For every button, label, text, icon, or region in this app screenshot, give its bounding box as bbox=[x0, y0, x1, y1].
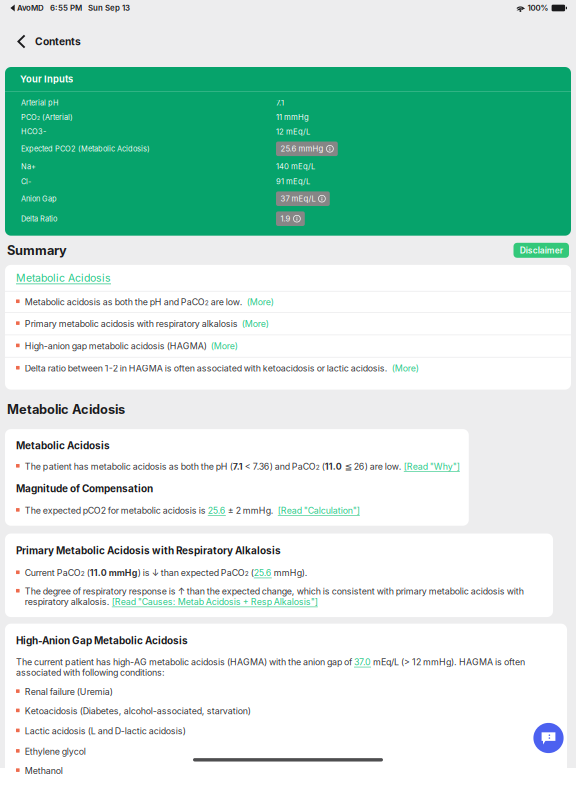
staticText: Summary bbox=[7, 243, 67, 258]
button[interactable]: Metabolic acidosis as both the pH and Pa… bbox=[5, 291, 571, 312]
staticText: Your Inputs bbox=[20, 73, 73, 85]
staticText: Methanol bbox=[25, 765, 63, 776]
staticText: Expected PCO2 (Metabolic Acidosis) bbox=[21, 144, 150, 153]
staticText: Renal failure (Uremia) bbox=[25, 686, 113, 697]
staticText: Metabolic Acidosis bbox=[16, 272, 111, 284]
button[interactable]: Delta ratio between 1-2 in HAGMA is ofte… bbox=[5, 357, 571, 379]
button[interactable]: Metabolic Acidosis bbox=[5, 265, 571, 291]
staticText: The expected pCO2 for metabolic acidosis… bbox=[25, 505, 360, 516]
staticText: 100% bbox=[526, 3, 549, 13]
staticText: Current PaCO2 (11.0 mmHg) is ↓ than expe… bbox=[25, 568, 308, 578]
staticText: Disclaimer bbox=[520, 245, 563, 255]
staticText: 1.9 bbox=[280, 214, 290, 223]
staticText: Metabolic Acidosis bbox=[7, 402, 125, 417]
staticText: 11 mmHg bbox=[276, 112, 309, 122]
button[interactable]: Disclaimer bbox=[513, 243, 569, 258]
staticText: HCO3- bbox=[21, 127, 46, 136]
staticText: The patient has metabolic acidosis as bo… bbox=[25, 461, 460, 472]
staticText: Ketoacidosis (Diabetes, alcohol-associat… bbox=[25, 706, 251, 716]
staticText: Arterial pH bbox=[21, 98, 59, 107]
staticText: Primary metabolic acidosis with respirat… bbox=[25, 318, 269, 329]
staticText: PCO2 (Arterial) bbox=[21, 113, 73, 122]
staticText: Contents bbox=[35, 35, 81, 48]
staticText: Na+ bbox=[21, 162, 36, 171]
button[interactable]: Chat support bbox=[529, 719, 567, 757]
button[interactable]: Back bbox=[10, 27, 32, 55]
staticText: Delta ratio between 1-2 in HAGMA is ofte… bbox=[25, 363, 419, 374]
staticText: Sun Sep 13 bbox=[82, 3, 130, 13]
staticText: Primary Metabolic Acidosis with Respirat… bbox=[16, 545, 281, 557]
button[interactable]: Primary metabolic acidosis with respirat… bbox=[5, 313, 571, 335]
staticText: Ethylene glycol bbox=[25, 746, 86, 757]
staticText: Metabolic acidosis as both the pH and Pa… bbox=[25, 297, 274, 307]
staticText: 37 mEq/L bbox=[280, 194, 315, 203]
staticText: AvoMD bbox=[15, 3, 44, 13]
staticText: Magnitude of Compensation bbox=[16, 483, 153, 495]
staticText: 6:55 PM bbox=[44, 3, 82, 13]
staticText: 25.6 mmHg bbox=[280, 144, 323, 153]
staticText: 7.1 bbox=[276, 98, 284, 107]
staticText: Lactic acidosis (L and D-lactic acidosis… bbox=[25, 726, 186, 736]
button[interactable]: High-anion gap metabolic acidosis (HAGMA… bbox=[5, 335, 571, 357]
staticText: Delta Ratio bbox=[21, 214, 57, 223]
staticText: 91 mEq/L bbox=[276, 177, 310, 186]
staticText: 140 mEq/L bbox=[276, 162, 315, 171]
staticText: Anion Gap bbox=[21, 194, 57, 203]
staticText: Cl- bbox=[21, 177, 31, 186]
staticText: High-anion gap metabolic acidosis (HAGMA… bbox=[25, 341, 238, 351]
staticText: The degree of respiratory response is ↑ … bbox=[25, 586, 524, 607]
staticText: High-Anion Gap Metabolic Acidosis bbox=[16, 635, 188, 647]
staticText: Metabolic Acidosis bbox=[16, 440, 110, 452]
staticText: The current patient has high-AG metaboli… bbox=[16, 657, 525, 678]
staticText: 12 mEq/L bbox=[276, 127, 310, 136]
